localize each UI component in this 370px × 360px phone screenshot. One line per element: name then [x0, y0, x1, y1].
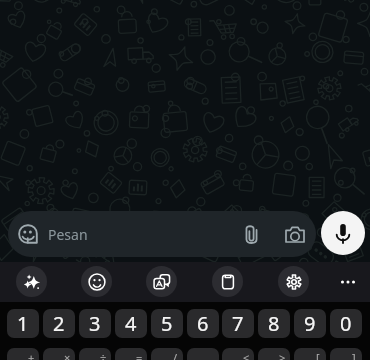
button[interactable]: 3 [79, 309, 111, 338]
button[interactable]: 9 [294, 309, 326, 338]
button[interactable]: 2 [43, 309, 75, 338]
button[interactable]: More options [332, 266, 363, 297]
button[interactable]: + [7, 348, 39, 360]
staticText: 6 [197, 310, 209, 337]
button[interactable]: 1 [7, 309, 39, 338]
staticText: 1 [17, 310, 29, 337]
staticText: Pesan [48, 225, 88, 244]
staticText: > [279, 350, 286, 360]
staticText: < [243, 350, 250, 360]
staticText: 5 [161, 310, 173, 337]
button[interactable]: 0 [330, 309, 362, 338]
button[interactable]: Emoji [8, 211, 316, 257]
staticText: = [136, 350, 143, 360]
button[interactable]: ] [330, 348, 362, 360]
button[interactable]: Camera [281, 211, 309, 257]
button[interactable]: GIF [146, 266, 177, 297]
staticText: [ [316, 350, 320, 360]
button[interactable]: 6 [187, 309, 219, 338]
button[interactable]: 4 [115, 309, 147, 338]
staticText: ÷ [100, 350, 107, 360]
button[interactable]: / [151, 348, 183, 360]
button[interactable]: × [43, 348, 75, 360]
button[interactable]: > [258, 348, 290, 360]
staticText: 0 [340, 310, 352, 337]
staticText: / [173, 350, 178, 360]
button[interactable]: AI assistant [16, 266, 47, 297]
button[interactable]: Emoji [8, 211, 48, 257]
staticText: 9 [304, 310, 316, 337]
button[interactable]: Clipboard [212, 266, 243, 297]
staticText: × [64, 350, 71, 360]
button[interactable]: ÷ [79, 348, 111, 360]
button[interactable]: Stickers [81, 266, 112, 297]
button[interactable]: _ [187, 348, 219, 360]
button[interactable]: 8 [258, 309, 290, 338]
staticText: 2 [53, 310, 65, 337]
button[interactable]: 7 [222, 309, 254, 338]
button[interactable]: [ [294, 348, 326, 360]
button[interactable]: Settings [278, 266, 309, 297]
staticText: 4 [125, 310, 137, 337]
staticText: 3 [89, 310, 101, 337]
staticText: ] [352, 350, 356, 360]
button[interactable]: = [115, 348, 147, 360]
staticText: 7 [232, 310, 244, 337]
button[interactable]: Voice message [321, 211, 365, 255]
button[interactable]: 5 [151, 309, 183, 338]
staticText: 8 [268, 310, 280, 337]
button[interactable]: Attach [237, 211, 265, 257]
button[interactable]: < [222, 348, 254, 360]
staticText: + [28, 350, 35, 360]
